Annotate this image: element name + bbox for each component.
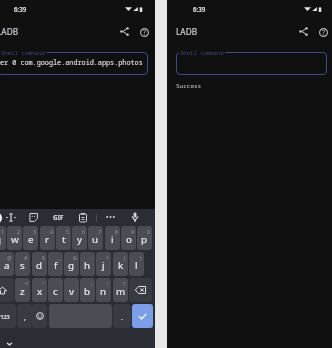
button[interactable]: Backspace	[129, 278, 152, 302]
staticText: m	[116, 285, 126, 298]
button[interactable]: m	[113, 278, 128, 302]
staticText: s	[20, 259, 25, 272]
button[interactable]: Share	[294, 22, 312, 40]
button[interactable]: y	[72, 226, 87, 250]
button[interactable]: j	[96, 252, 111, 276]
staticText: 0	[147, 228, 150, 235]
staticText: _	[58, 254, 61, 261]
staticText: j	[102, 259, 105, 272]
button[interactable]: o	[121, 226, 136, 250]
button[interactable]: Period	[113, 304, 131, 328]
button[interactable]: Emoji	[32, 304, 47, 328]
staticText: q	[0, 233, 2, 246]
staticText: GIF	[53, 213, 64, 221]
staticText: :	[75, 280, 77, 287]
button[interactable]: Voice input	[126, 210, 143, 224]
button[interactable]: h	[80, 252, 95, 276]
staticText: l	[135, 259, 138, 272]
staticText: ?	[322, 28, 325, 37]
staticText: n	[100, 285, 107, 298]
staticText: ?123	[0, 313, 10, 320]
button[interactable]: Help	[314, 23, 332, 41]
button[interactable]: sticker	[25, 210, 42, 224]
button[interactable]: v	[64, 278, 79, 302]
staticText: x	[37, 285, 43, 298]
button[interactable]: k	[113, 252, 128, 276]
staticText: 9	[131, 228, 134, 235]
button[interactable]: Google	[0, 212, 2, 224]
button[interactable]: i	[105, 226, 120, 250]
staticText: ?	[143, 28, 146, 37]
staticText: i	[111, 233, 114, 246]
staticText: b	[84, 285, 91, 298]
button[interactable]: u	[88, 226, 103, 250]
button[interactable]: Hide keyboard	[2, 337, 16, 348]
button[interactable]: w	[7, 226, 22, 250]
staticText: 1	[1, 228, 4, 235]
button[interactable]: x	[32, 278, 47, 302]
staticText: 2	[17, 228, 20, 235]
button[interactable]: Shift	[0, 278, 14, 302]
staticText: .	[121, 313, 123, 323]
button[interactable]: n	[96, 278, 111, 302]
button[interactable]: Share	[115, 22, 133, 40]
button[interactable]	[176, 52, 327, 75]
button[interactable]: Symbols	[0, 304, 16, 328]
staticText: '	[59, 280, 61, 287]
staticText: Shell command	[1, 49, 45, 57]
button[interactable]: f	[48, 252, 63, 276]
staticText: f	[54, 259, 58, 272]
button[interactable]: e	[23, 226, 38, 250]
button[interactable]: l	[129, 252, 144, 276]
staticText: !	[107, 280, 109, 287]
button[interactable]: More options	[102, 210, 119, 224]
staticText: k	[118, 259, 124, 272]
staticText: 6:39	[14, 5, 27, 13]
button[interactable]: s	[15, 252, 30, 276]
staticText: @	[7, 254, 12, 261]
staticText: g	[68, 259, 75, 272]
button[interactable]: r	[40, 226, 55, 250]
staticText: e	[28, 233, 34, 246]
staticText: h	[84, 259, 91, 272]
button[interactable]: t	[56, 226, 71, 250]
button[interactable]: q	[0, 226, 6, 250]
button[interactable]: z	[15, 278, 30, 302]
staticText: w	[11, 233, 19, 246]
staticText: er 0 com.google.android.apps.photos	[0, 58, 143, 67]
button[interactable]: d	[32, 252, 47, 276]
button[interactable]: p	[137, 226, 152, 250]
staticText: 3	[33, 228, 36, 235]
staticText: 4	[50, 228, 53, 235]
button[interactable]: a	[0, 252, 14, 276]
button[interactable]: g	[64, 252, 79, 276]
button[interactable]: cursor	[2, 210, 19, 224]
button[interactable]: gif	[50, 210, 67, 224]
button[interactable]: Comma	[17, 304, 32, 328]
staticText: LADB	[176, 26, 198, 37]
button[interactable]: Enter	[132, 304, 153, 328]
button[interactable]: Help	[135, 23, 153, 41]
button[interactable]: c	[48, 278, 63, 302]
staticText: u	[92, 233, 99, 246]
staticText: v	[69, 285, 74, 298]
staticText: "	[42, 280, 45, 287]
staticText: y	[77, 233, 82, 246]
staticText: a	[4, 259, 10, 272]
staticText: ;	[91, 280, 93, 287]
staticText: r	[45, 233, 50, 246]
staticText: LADB	[0, 26, 19, 37]
staticText: ,	[24, 313, 26, 323]
staticText: p	[141, 233, 148, 246]
button[interactable]: clipboard	[74, 210, 91, 224]
staticText: ?	[123, 280, 126, 287]
staticText: )	[140, 254, 142, 261]
staticText: $	[42, 254, 45, 261]
staticText: (	[124, 254, 126, 261]
button[interactable]: er 0 com.google.android.apps.photos	[0, 52, 148, 75]
button[interactable]: b	[80, 278, 95, 302]
staticText: &	[73, 254, 77, 261]
staticText: t	[62, 233, 66, 246]
staticText: #	[24, 254, 28, 261]
